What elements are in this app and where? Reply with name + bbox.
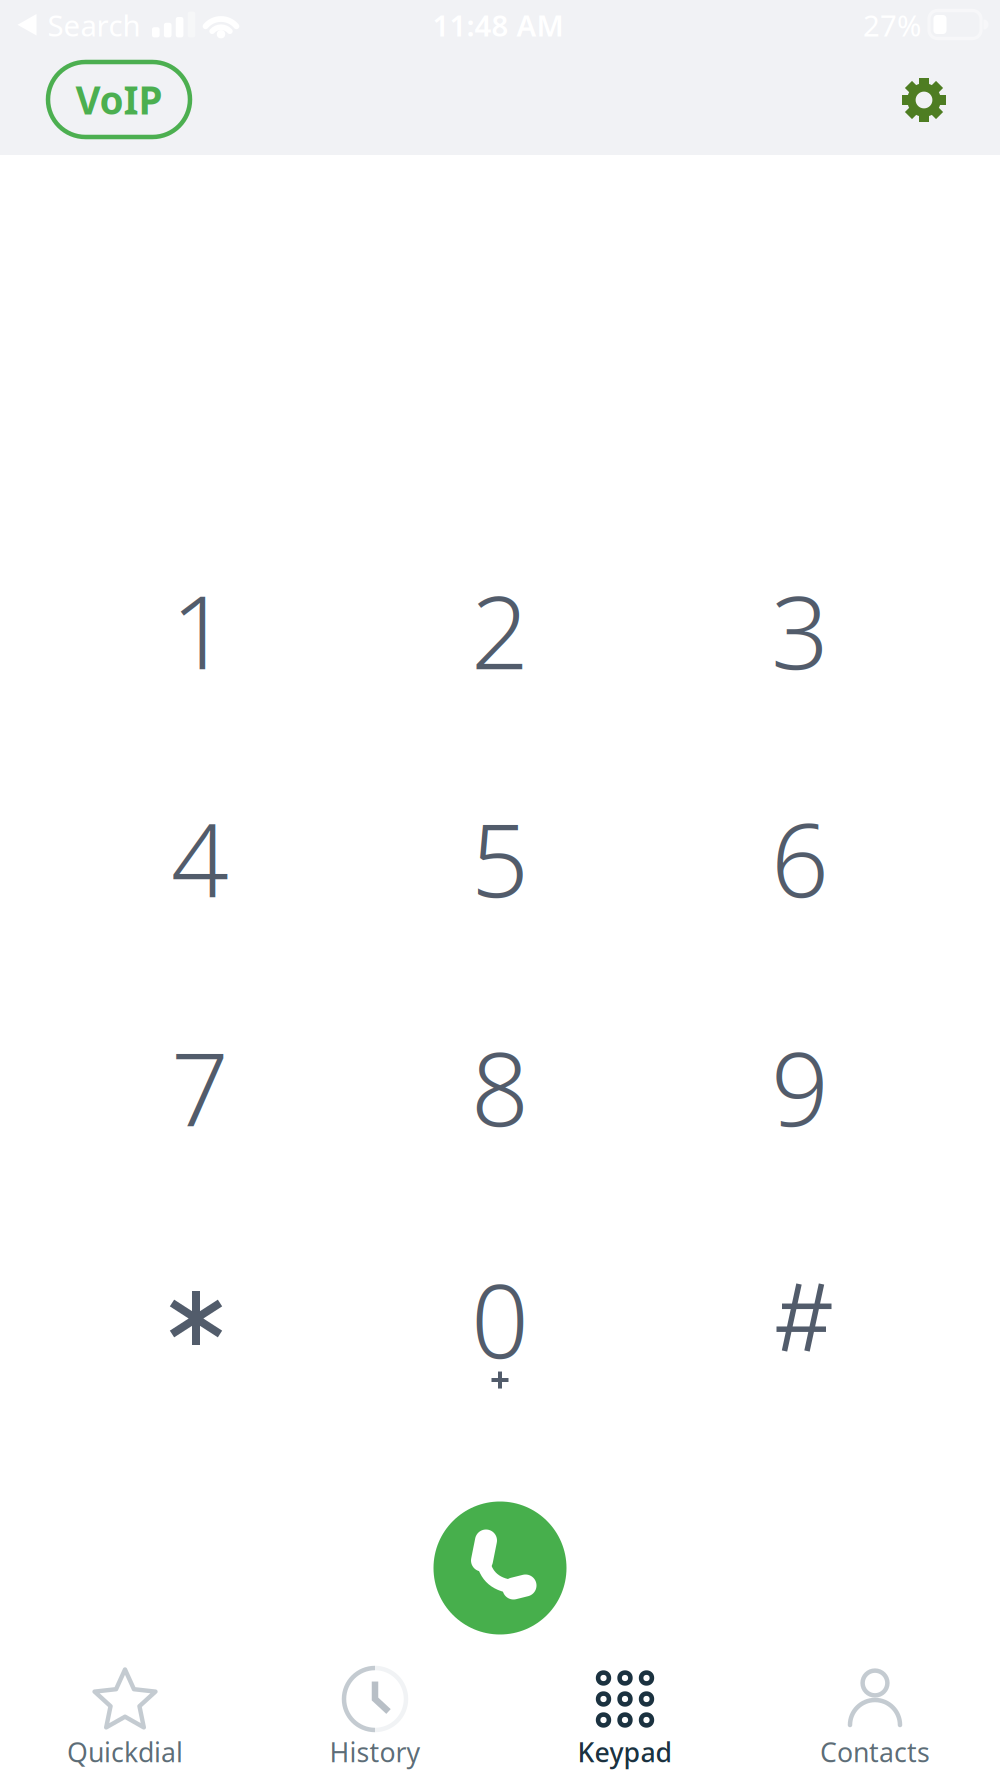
button[interactable]: Pound: [680, 1226, 920, 1406]
button[interactable]: Quickdial: [0, 1652, 250, 1778]
staticText: Keypad: [577, 1734, 672, 1770]
button[interactable]: 5: [380, 768, 620, 948]
button[interactable]: 9: [680, 997, 920, 1177]
staticText: 7: [171, 1020, 229, 1154]
staticText: 8: [471, 1020, 529, 1154]
button[interactable]: 2: [380, 540, 620, 720]
staticText: History: [329, 1734, 420, 1770]
staticText: 1: [171, 563, 229, 697]
button[interactable]: History: [250, 1652, 500, 1778]
button[interactable]: Asterisk: [76, 1228, 316, 1408]
staticText: 9: [771, 1020, 829, 1154]
staticText: VoIP: [75, 74, 162, 125]
staticText: 3: [771, 563, 829, 697]
staticText: 5: [471, 791, 529, 925]
button[interactable]: VoIP: [48, 62, 190, 137]
button[interactable]: 1: [80, 540, 320, 720]
button[interactable]: 8: [380, 997, 620, 1177]
staticText: 2: [471, 563, 529, 697]
button[interactable]: 3: [680, 540, 920, 720]
button[interactable]: Settings: [889, 65, 959, 135]
button[interactable]: 7: [80, 997, 320, 1177]
staticText: 27%: [863, 5, 921, 44]
staticText: 4: [171, 791, 229, 925]
staticText: 6: [771, 791, 829, 925]
button[interactable]: Keypad: [500, 1652, 750, 1778]
staticText: Quickdial: [67, 1734, 183, 1770]
button[interactable]: 0: [380, 1229, 620, 1409]
button[interactable]: Call: [433, 1501, 566, 1634]
staticText: 11:48 AM: [432, 5, 563, 44]
button[interactable]: 6: [680, 768, 920, 948]
button[interactable]: 4: [80, 768, 320, 948]
staticText: Contacts: [820, 1734, 930, 1770]
staticText: Search: [47, 5, 140, 44]
button[interactable]: Contacts: [750, 1652, 1000, 1778]
staticText: 0: [471, 1252, 529, 1386]
